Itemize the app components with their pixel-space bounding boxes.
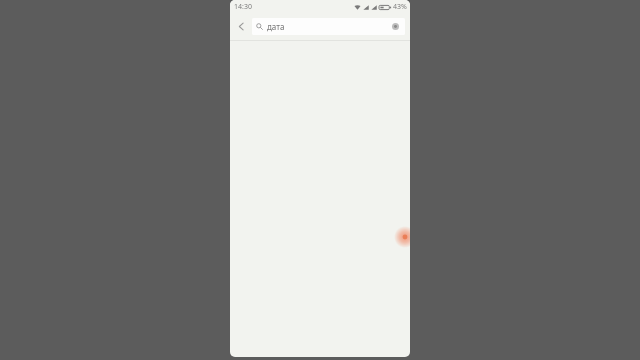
button[interactable]: дата — [252, 18, 405, 35]
staticText: дата — [267, 21, 390, 32]
button[interactable]: Back — [230, 13, 252, 40]
staticText: 14:30 — [234, 2, 252, 12]
button[interactable]: Clear search — [390, 21, 401, 32]
staticText: 43% — [393, 2, 407, 12]
